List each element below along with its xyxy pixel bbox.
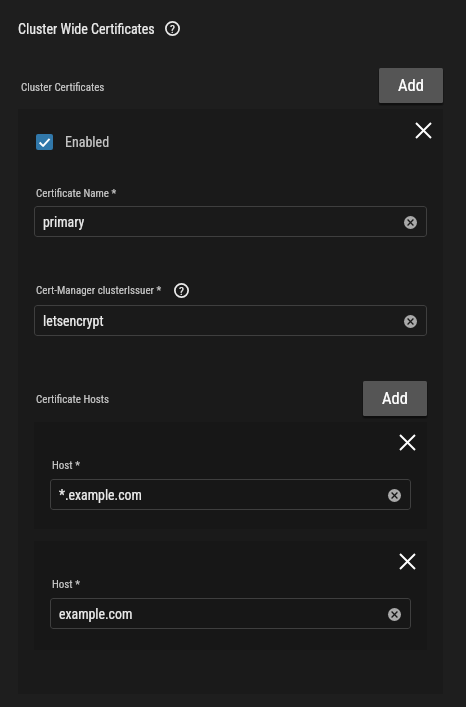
button[interactable]: Add: [363, 381, 427, 416]
staticText: Cluster Certificates: [21, 81, 105, 94]
button[interactable]: Enabled: [36, 134, 110, 150]
button[interactable]: Add: [379, 68, 443, 103]
staticText: Certificate Name *: [36, 187, 117, 200]
button[interactable]: Help: [171, 280, 192, 301]
staticText: Cert-Manager clusterIssuer *: [36, 284, 162, 297]
button[interactable]: example.com: [50, 598, 411, 629]
button[interactable]: Help: [162, 18, 183, 39]
button[interactable]: primary: [34, 206, 427, 237]
staticText: *.example.com: [59, 487, 142, 503]
button[interactable]: *.example.com: [50, 479, 411, 510]
staticText: Add: [398, 76, 424, 95]
staticText: ?: [170, 22, 175, 36]
staticText: Host *: [52, 578, 80, 591]
button[interactable]: Clear: [400, 212, 420, 232]
staticText: Enabled: [65, 134, 110, 150]
button[interactable]: Clear: [384, 604, 404, 624]
staticText: Certificate Hosts: [36, 393, 110, 406]
button[interactable]: Remove: [410, 117, 436, 143]
button[interactable]: letsencrypt: [34, 305, 427, 336]
staticText: Cluster Wide Certificates: [18, 21, 155, 37]
staticText: example.com: [59, 606, 133, 622]
staticText: Host *: [52, 459, 80, 472]
staticText: letsencrypt: [43, 313, 104, 329]
staticText: primary: [43, 214, 85, 230]
staticText: Add: [382, 389, 408, 408]
button[interactable]: Clear: [400, 311, 420, 331]
button[interactable]: Remove: [394, 429, 420, 455]
button[interactable]: Remove: [394, 548, 420, 574]
staticText: ?: [179, 284, 184, 298]
button[interactable]: Clear: [384, 485, 404, 505]
